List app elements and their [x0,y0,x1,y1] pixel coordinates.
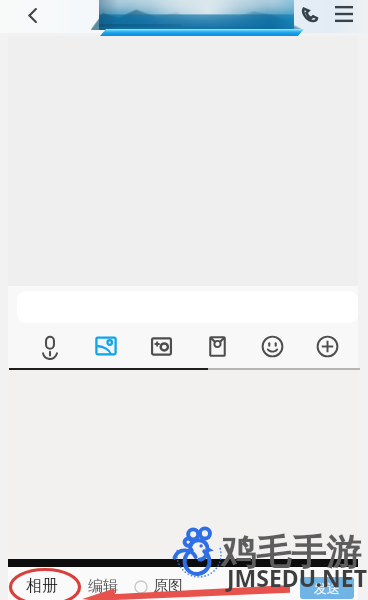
button[interactable]: Emoji [252,326,292,366]
button[interactable]: Back [14,0,50,30]
button[interactable]: Red packet [197,326,237,366]
button[interactable]: Call [292,0,328,28]
button[interactable]: Voice message [30,326,70,366]
staticText: JMSEDU.NET [227,562,367,593]
button[interactable]: 发送 [300,577,354,599]
button[interactable]: More [307,326,347,366]
staticText: 鸡毛手游 [221,530,361,574]
staticText: 原图 [153,577,183,596]
button[interactable]: 编辑 [88,577,118,596]
button[interactable]: Menu [326,0,362,28]
button[interactable]: 相册 [26,576,58,596]
staticText: 相册 [26,576,58,596]
staticText: 编辑 [88,577,118,596]
staticText: 发送 [314,580,340,596]
button[interactable]: Album [86,326,126,366]
button[interactable]: Camera [141,326,181,366]
button[interactable]: 原图 [134,577,183,596]
